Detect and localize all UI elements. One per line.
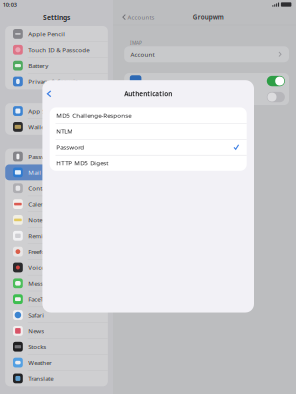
- staticText: Groupwm: [193, 13, 224, 21]
- button[interactable]: Freeform: [5, 244, 108, 259]
- staticText: NTLM: [56, 127, 73, 135]
- staticText: Accounts: [128, 13, 155, 21]
- button[interactable]: Stocks: [5, 339, 108, 355]
- button[interactable]: Touch ID & Passcode: [5, 42, 108, 58]
- button[interactable]: Back: [42, 85, 58, 102]
- staticText: Freeform: [28, 247, 54, 256]
- button[interactable]: Password: [50, 139, 247, 155]
- button[interactable]: Safari: [5, 307, 108, 323]
- button[interactable]: Voice Memos: [5, 259, 108, 275]
- staticText: App Store: [28, 107, 56, 115]
- button[interactable]: Battery: [5, 58, 108, 73]
- staticText: Battery: [28, 61, 48, 70]
- button[interactable]: Contacts: [5, 180, 108, 196]
- staticText: IMAP: [130, 40, 142, 46]
- staticText: MD5 Challenge-Response: [56, 111, 131, 119]
- staticText: Passwords: [28, 152, 59, 161]
- button[interactable]: Privacy & Security: [5, 73, 108, 89]
- staticText: 10:03: [3, 1, 17, 8]
- button[interactable]: Messages: [5, 275, 108, 291]
- button[interactable]: NTLM: [50, 123, 247, 139]
- button[interactable]: FaceTime: [5, 291, 108, 307]
- button[interactable]: Account: [113, 46, 296, 62]
- button[interactable]: App Store: [5, 103, 108, 119]
- button[interactable]: Reminders: [5, 228, 108, 244]
- staticText: Wallet: [28, 123, 46, 131]
- staticText: Voice Memos: [28, 263, 68, 272]
- staticText: Authentication: [124, 89, 172, 98]
- staticText: Apple Pencil: [28, 30, 65, 38]
- staticText: HTTP MD5 Digest: [56, 159, 108, 167]
- staticText: Weather: [28, 358, 52, 367]
- staticText: Reminders: [28, 232, 60, 240]
- staticText: Notes: [28, 216, 45, 224]
- button[interactable]: Notes: [5, 212, 108, 228]
- staticText: Account: [131, 50, 155, 58]
- staticText: Stocks: [28, 342, 46, 351]
- button[interactable]: Calendar: [5, 196, 108, 212]
- button[interactable]: Disabled setting: [124, 89, 289, 105]
- staticText: Translate: [28, 374, 53, 383]
- button[interactable]: Wallet: [5, 119, 108, 135]
- staticText: Calendar: [28, 200, 54, 208]
- button[interactable]: HTTP MD5 Digest: [50, 155, 247, 171]
- button[interactable]: Mail: [5, 164, 108, 180]
- staticText: Privacy & Security: [28, 77, 80, 86]
- staticText: Mail: [28, 168, 41, 177]
- button[interactable]: Weather: [5, 355, 108, 370]
- staticText: Safari: [28, 311, 44, 319]
- button[interactable]: Translate: [5, 370, 108, 386]
- button[interactable]: Passwords: [5, 149, 108, 164]
- staticText: News: [28, 327, 44, 335]
- staticText: Contacts: [28, 184, 53, 192]
- staticText: Messages: [28, 279, 56, 287]
- staticText: FaceTime: [28, 295, 54, 303]
- staticText: Password: [56, 143, 84, 151]
- staticText: Touch ID & Passcode: [28, 46, 89, 54]
- button[interactable]: Accounts: [122, 10, 155, 24]
- button[interactable]: MD5 Challenge-Response: [50, 107, 247, 123]
- button[interactable]: Apple Pencil: [5, 26, 108, 42]
- staticText: Settings: [43, 13, 70, 22]
- button[interactable]: News: [5, 323, 108, 339]
- button[interactable]: Enabled setting: [124, 73, 289, 89]
